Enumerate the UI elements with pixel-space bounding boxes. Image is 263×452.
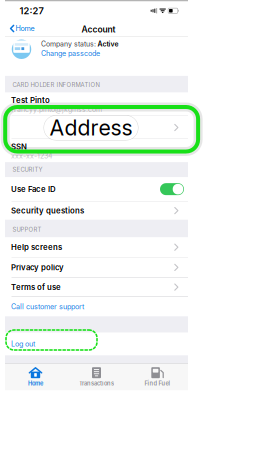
- staticText: Call customer support: [11, 302, 84, 311]
- staticText: Test Pinto: [11, 95, 50, 105]
- staticText: SSN: [11, 142, 27, 151]
- staticText: SUPPORT: [12, 226, 41, 233]
- staticText: Security questions: [11, 206, 84, 215]
- button[interactable]: Log out: [5, 333, 188, 355]
- button[interactable]: Find Fuel: [127, 364, 188, 390]
- staticText: Use Face ID: [11, 184, 56, 194]
- button[interactable]: Change passcode: [41, 49, 100, 58]
- button[interactable]: Call customer support: [5, 297, 188, 316]
- staticText: Company status:: [41, 40, 96, 48]
- button[interactable]: SSN: [5, 138, 188, 162]
- staticText: Log out: [11, 340, 35, 348]
- staticText: Home: [16, 24, 35, 33]
- staticText: Terms of use: [11, 282, 61, 292]
- staticText: Address: [49, 115, 132, 141]
- button[interactable]: Transactions: [66, 364, 127, 390]
- staticText: Transactions: [79, 380, 114, 387]
- staticText: Active: [98, 40, 119, 48]
- staticText: Home: [28, 380, 43, 387]
- staticText: SECURITY: [12, 166, 42, 173]
- staticText: Privacy policy: [11, 263, 64, 272]
- staticText: CARD HOLDER INFORMATION: [12, 81, 99, 88]
- button[interactable]: Terms of use: [5, 278, 188, 296]
- button[interactable]: Home: [5, 21, 35, 36]
- staticText: xxx-xx-1234: [11, 152, 52, 160]
- staticText: francyy.pinto@jkgmss.com: [11, 105, 102, 114]
- button[interactable]: Privacy policy: [5, 257, 188, 277]
- staticText: Find Fuel: [144, 380, 170, 387]
- button[interactable]: Home: [5, 364, 66, 390]
- staticText: Account: [81, 24, 115, 35]
- button[interactable]: Use Face ID: [5, 177, 188, 201]
- button[interactable]: [5, 115, 188, 138]
- button[interactable]: Help screens: [5, 237, 188, 257]
- staticText: Help screens: [11, 242, 62, 252]
- button[interactable]: Security questions: [5, 201, 188, 220]
- staticText: 12:27: [19, 5, 43, 16]
- button[interactable]: Test Pinto: [5, 93, 188, 115]
- staticText: Change passcode: [41, 49, 100, 58]
